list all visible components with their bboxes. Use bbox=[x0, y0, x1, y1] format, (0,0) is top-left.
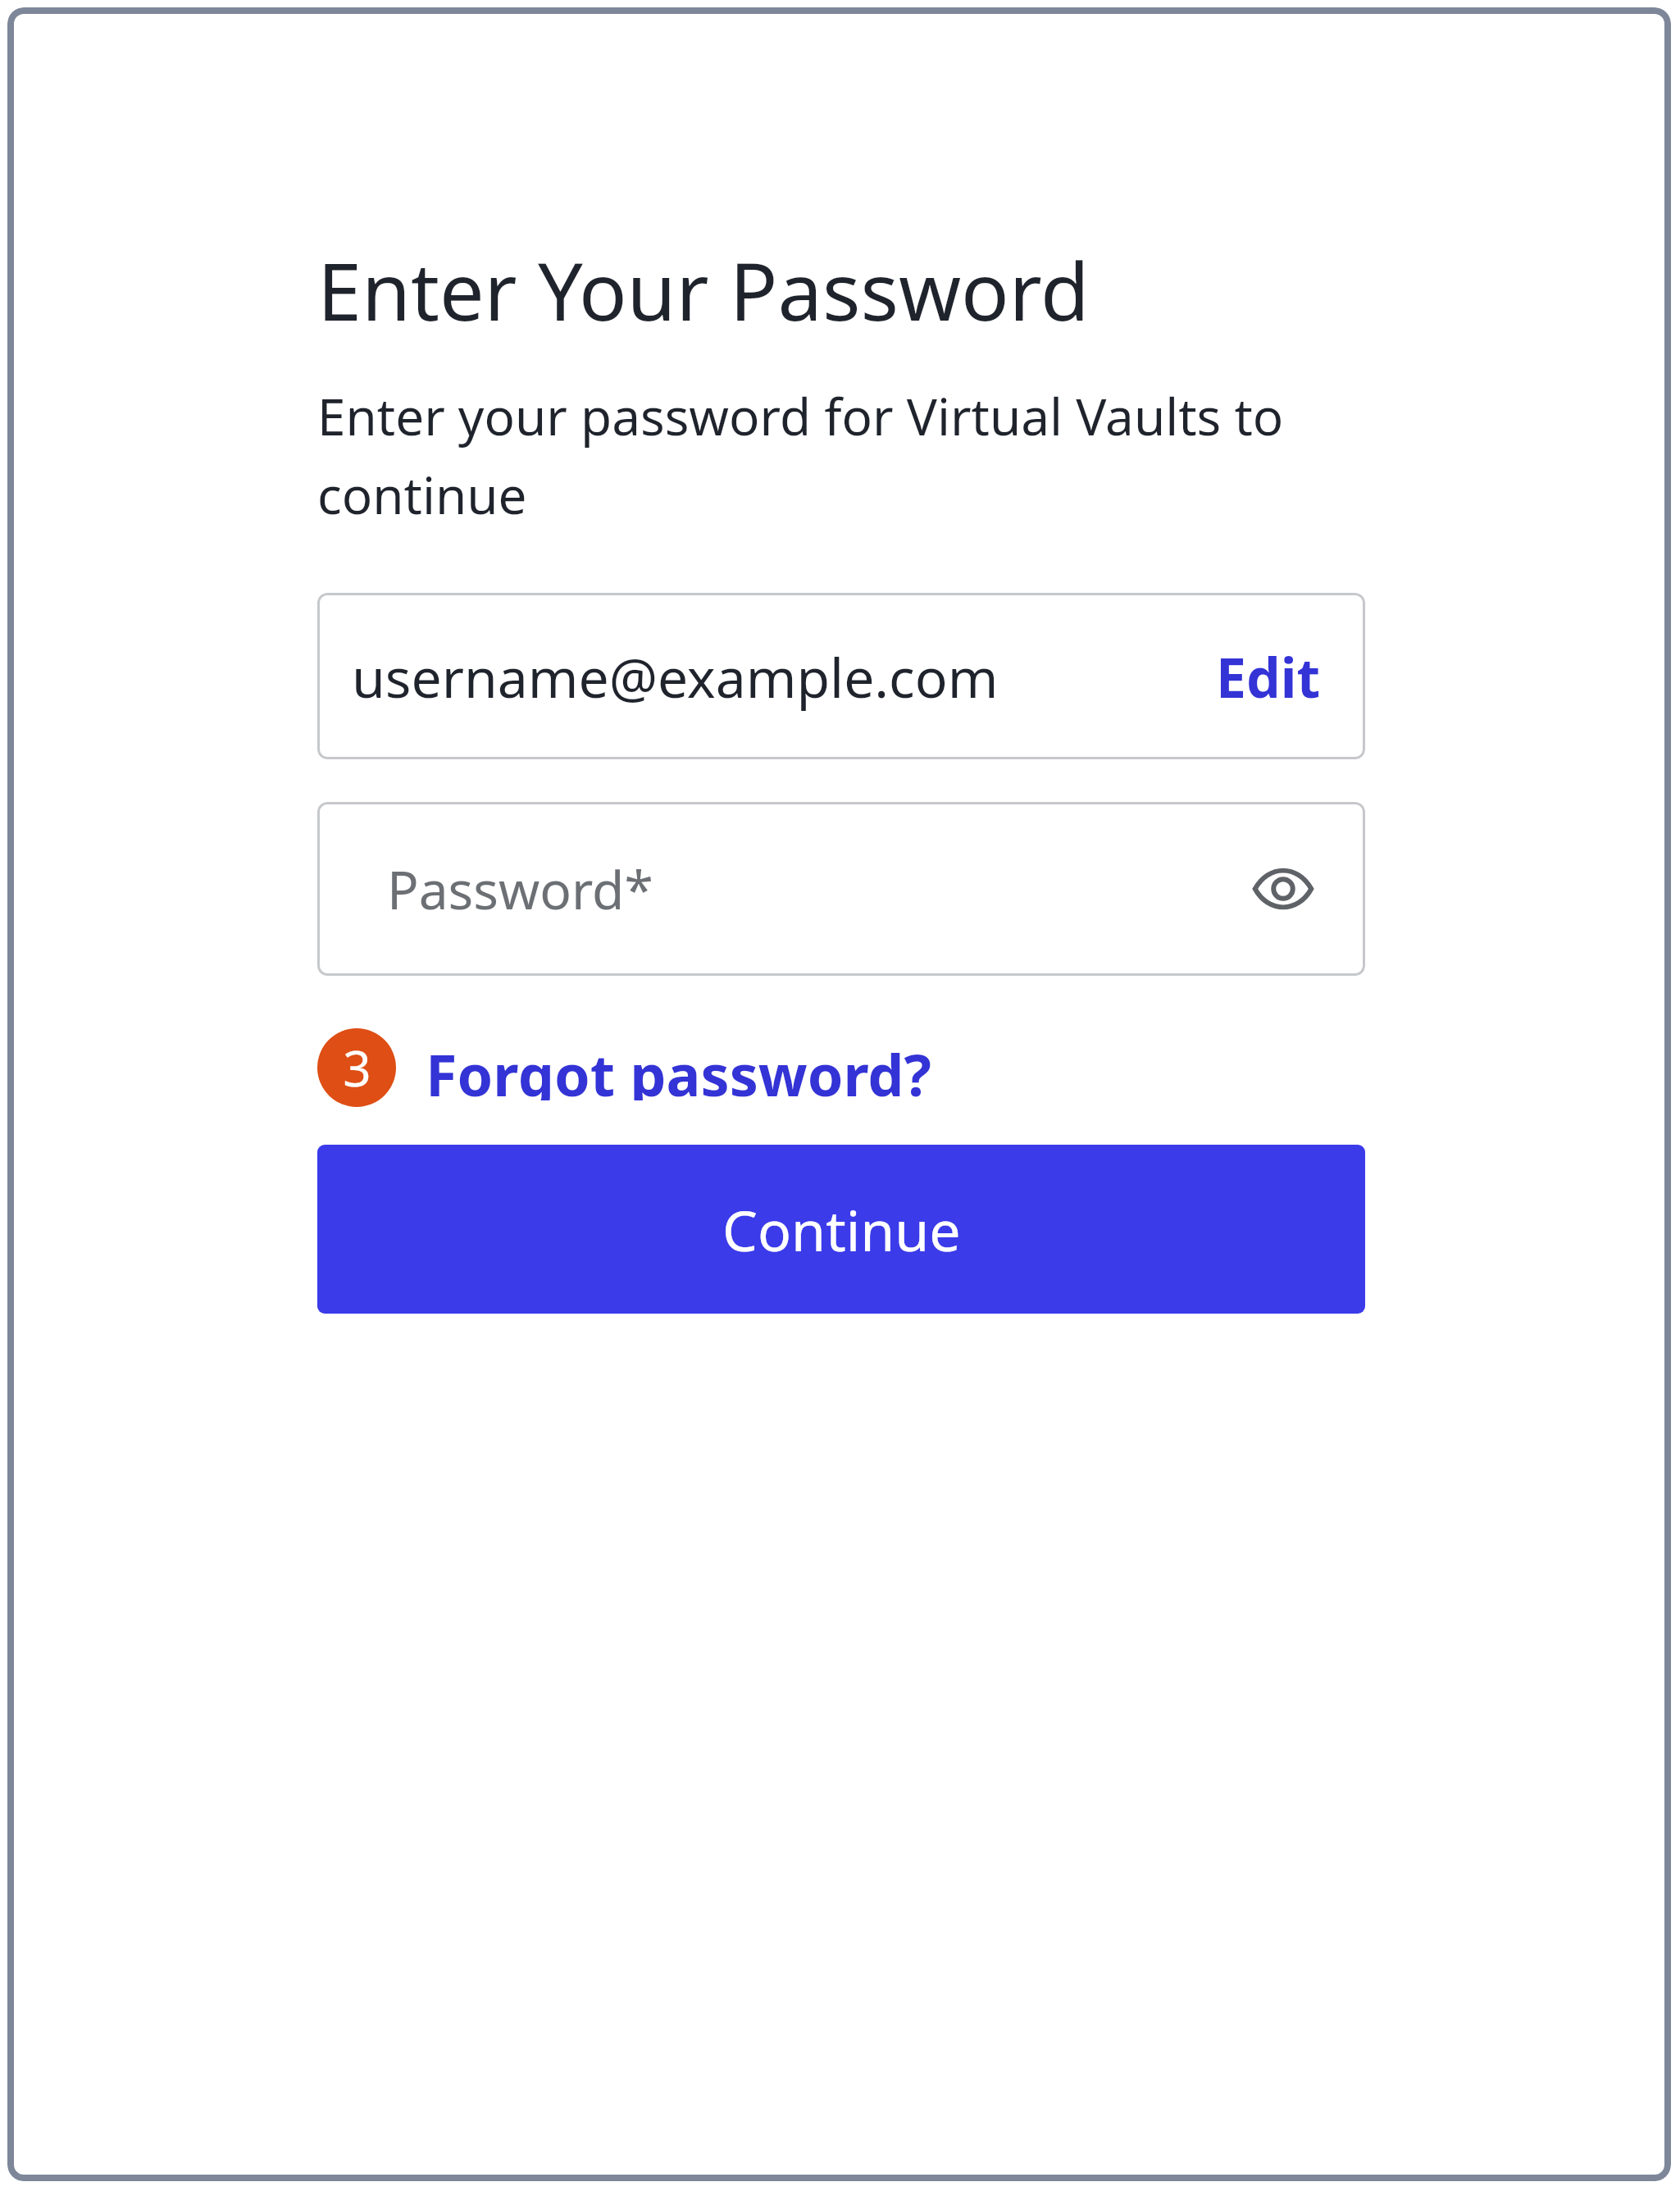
button[interactable]: Show password bbox=[1244, 850, 1323, 928]
staticText: username@example.com bbox=[352, 640, 1211, 713]
button[interactable]: username@example.com bbox=[317, 593, 1365, 759]
button[interactable]: Continue bbox=[317, 1145, 1365, 1314]
button[interactable]: Password* bbox=[317, 802, 1365, 976]
staticText: Enter your password for Virtual Vaults t… bbox=[317, 381, 1365, 529]
staticText: Continue bbox=[722, 1191, 961, 1268]
staticText: Password* bbox=[387, 854, 1244, 925]
staticText: Forgot password? bbox=[426, 1035, 931, 1100]
button[interactable]: Forgot password? bbox=[426, 1028, 931, 1107]
staticText: Edit bbox=[1216, 640, 1321, 713]
staticText: Enter Your Password bbox=[317, 235, 1090, 344]
staticText: 3 bbox=[343, 1034, 371, 1101]
button[interactable]: Edit bbox=[1211, 631, 1326, 722]
